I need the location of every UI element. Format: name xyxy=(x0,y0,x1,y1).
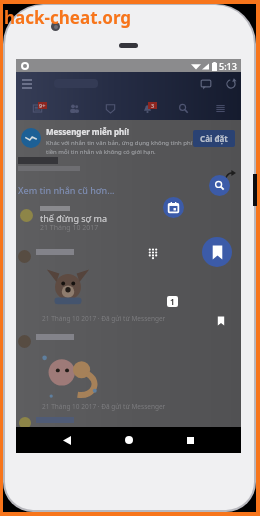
staticText: hack-cheat.org xyxy=(4,6,132,29)
button[interactable]: Badge one xyxy=(167,296,178,307)
staticText: 21 Tháng 10 2017 · Đã gửi từ Messenger xyxy=(42,402,166,411)
staticText: 3 xyxy=(151,102,155,109)
button[interactable]: Search xyxy=(168,95,198,120)
button[interactable]: Dialpad xyxy=(148,248,158,258)
button[interactable]: Menu xyxy=(205,95,235,120)
button[interactable]: Cài đặt xyxy=(193,130,235,147)
staticText: tiền mỗi tin nhắn và không có giới hạn. xyxy=(46,148,156,156)
staticText: Messenger miễn phí! xyxy=(46,126,129,137)
button[interactable]: Events xyxy=(163,197,184,218)
staticText: 21 Tháng 10 2017 xyxy=(40,223,99,233)
button[interactable]: Refresh xyxy=(225,78,237,90)
button[interactable]: Xem tin nhắn cũ hơn... xyxy=(18,184,115,196)
staticText: Khác với nhắn tin văn bản, ứng dụng khôn… xyxy=(46,139,193,147)
button[interactable]: Back xyxy=(56,429,78,451)
button[interactable]: Search xyxy=(209,175,230,196)
button[interactable]: Friends xyxy=(59,95,89,120)
button[interactable]: Home xyxy=(118,429,140,451)
staticText: 1 xyxy=(170,296,175,307)
button[interactable]: Notifications xyxy=(132,95,162,120)
button[interactable]: Messages xyxy=(200,78,212,90)
button[interactable]: News feed xyxy=(22,95,52,120)
button[interactable]: Recents xyxy=(179,429,201,451)
button[interactable]: Saved xyxy=(202,237,232,267)
staticText: 9+ xyxy=(39,102,46,109)
button[interactable]: Watch xyxy=(95,95,125,120)
staticText: 5:13 xyxy=(219,60,237,72)
button[interactable]: Bookmark xyxy=(216,316,226,326)
staticText: 21 Tháng 10 2017 · Đã gửi từ Messenger xyxy=(42,314,166,323)
staticText: thế đừng sợ ma xyxy=(40,212,107,224)
staticText: Cài đặt xyxy=(200,133,228,144)
